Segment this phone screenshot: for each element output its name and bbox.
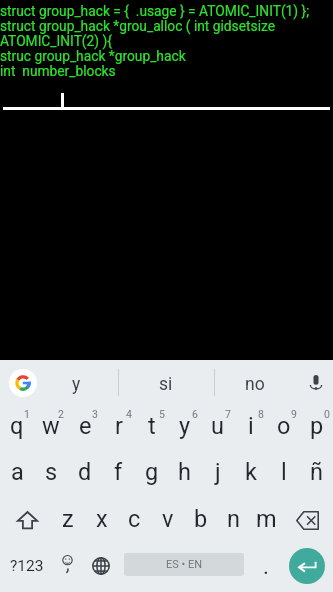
staticText: a (11, 458, 24, 486)
staticText: 8 (258, 408, 264, 420)
staticText: c (128, 505, 141, 533)
button[interactable]: . (244, 545, 286, 592)
staticText: no (245, 374, 265, 395)
button[interactable]: si (121, 360, 210, 406)
button[interactable]: w (34, 406, 68, 452)
staticText: u (211, 412, 224, 440)
button[interactable]: Backspace (283, 498, 333, 545)
button[interactable]: ?123 (0, 545, 51, 592)
staticText: l (281, 458, 287, 486)
staticText: z (62, 505, 74, 533)
staticText: h (178, 458, 191, 486)
staticText: struct group_hack = { .usage } = ATOMIC_… (0, 3, 310, 79)
staticText: p (310, 412, 324, 440)
staticText: y (72, 374, 81, 395)
staticText: ?123 (10, 557, 44, 575)
button[interactable]: d (68, 452, 102, 498)
staticText: k (245, 458, 257, 486)
button[interactable]: g (135, 452, 168, 498)
button[interactable]: j (201, 452, 234, 498)
staticText: i (248, 412, 254, 440)
button[interactable]: u (201, 406, 234, 452)
button[interactable]: y (168, 406, 201, 452)
button[interactable]: Google (0, 360, 31, 406)
button[interactable]: c (118, 498, 151, 545)
button[interactable]: m (250, 498, 283, 545)
staticText: 4 (126, 408, 132, 420)
button[interactable]: Shift (0, 498, 51, 545)
button[interactable]: x (85, 498, 118, 545)
button[interactable]: p (300, 406, 333, 452)
button[interactable]: Emoji (51, 545, 84, 592)
staticText: g (145, 458, 159, 486)
button[interactable]: l (267, 452, 300, 498)
button[interactable]: Voice input (299, 360, 333, 406)
staticText: r (115, 412, 123, 440)
staticText: 7 (225, 408, 231, 420)
staticText: e (79, 412, 92, 440)
staticText: 0 (324, 408, 330, 420)
button[interactable]: o (267, 406, 300, 452)
button[interactable]: k (234, 452, 267, 498)
button[interactable]: Enter (289, 548, 325, 584)
staticText: . (263, 553, 269, 579)
button[interactable]: f (102, 452, 135, 498)
staticText: 3 (92, 408, 98, 420)
button[interactable]: e (68, 406, 102, 452)
staticText: f (114, 458, 123, 486)
staticText: d (78, 458, 92, 486)
button[interactable]: y (31, 360, 121, 406)
staticText: 6 (192, 408, 198, 420)
button[interactable]: ES • EN (124, 553, 244, 576)
button[interactable]: n (217, 498, 250, 545)
staticText: si (159, 374, 173, 395)
staticText: ñ (310, 458, 323, 486)
staticText: t (148, 412, 156, 440)
button[interactable]: Switch language (84, 545, 117, 592)
button[interactable]: q (0, 406, 34, 452)
staticText: n (227, 505, 240, 533)
staticText: s (45, 458, 58, 486)
button[interactable]: z (51, 498, 85, 545)
button[interactable]: h (168, 452, 201, 498)
button[interactable]: b (184, 498, 217, 545)
button[interactable]: t (135, 406, 168, 452)
button[interactable]: s (34, 452, 68, 498)
button[interactable]: ñ (300, 452, 333, 498)
staticText: o (277, 412, 291, 440)
staticText: 2 (58, 408, 64, 420)
staticText: 1 (24, 408, 30, 420)
staticText: m (256, 505, 277, 533)
button[interactable]: v (151, 498, 184, 545)
button[interactable]: a (0, 452, 34, 498)
staticText: x (96, 505, 108, 533)
button[interactable]: i (234, 406, 267, 452)
staticText: ES • EN (166, 558, 203, 571)
staticText: b (194, 505, 208, 533)
staticText: w (42, 412, 60, 440)
staticText: 9 (291, 408, 297, 420)
staticText: y (179, 412, 191, 440)
staticText: q (10, 412, 24, 440)
staticText: j (215, 458, 221, 486)
staticText: v (162, 505, 174, 533)
button[interactable]: r (102, 406, 135, 452)
staticText: 5 (159, 408, 165, 420)
button[interactable]: no (210, 360, 299, 406)
